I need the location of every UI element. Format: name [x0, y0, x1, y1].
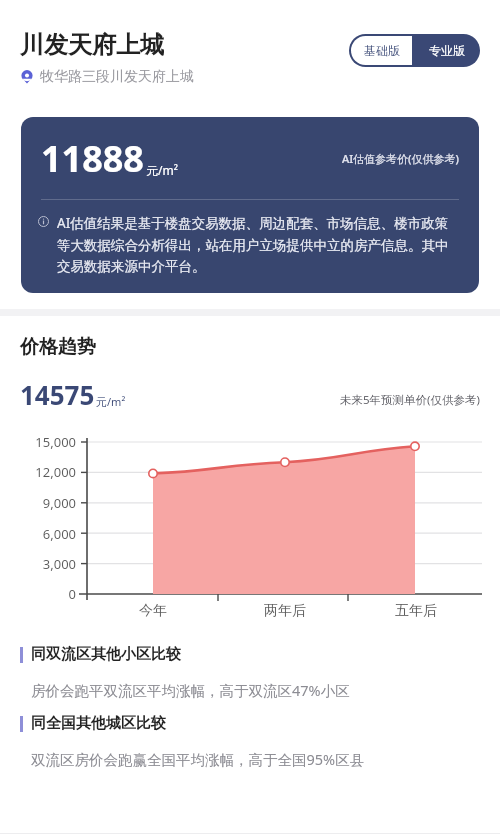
staticText: 同全国其他城区比较 — [31, 714, 166, 733]
staticText: 元/m² — [146, 162, 178, 178]
staticText: 五年后 — [382, 602, 450, 620]
staticText: 12,000 — [0, 463, 76, 481]
staticText: 价格趋势 — [20, 335, 96, 359]
button[interactable]: 11888 — [21, 117, 479, 293]
staticText: 15,000 — [0, 433, 76, 451]
staticText: 9,000 — [0, 494, 76, 512]
staticText: 两年后 — [251, 602, 319, 620]
staticText: 11888 — [41, 134, 144, 183]
staticText: 未来5年预测单价(仅供参考) — [340, 392, 480, 408]
button[interactable]: 基础版 — [351, 36, 412, 65]
staticText: 双流区房价会跑赢全国平均涨幅，高于全国95%区县 — [31, 749, 365, 769]
staticText: 3,000 — [0, 555, 76, 573]
button[interactable]: 同双流区其他小区比较 — [0, 645, 500, 700]
staticText: 专业版 — [429, 43, 465, 58]
staticText: 房价会跑平双流区平均涨幅，高于双流区47%小区 — [31, 680, 350, 700]
staticText: 同双流区其他小区比较 — [31, 645, 181, 664]
staticText: 川发天府上城 — [20, 30, 164, 60]
staticText: 基础版 — [364, 43, 400, 58]
staticText: AI估值结果是基于楼盘交易数据、周边配套、市场信息、楼市政策等大数据综合分析得出… — [57, 214, 459, 275]
staticText: 牧华路三段川发天府上城 — [40, 68, 194, 86]
staticText: AI估值参考价(仅供参考) — [342, 151, 459, 166]
staticText: 今年 — [128, 602, 178, 620]
staticText: 元/m² — [96, 394, 126, 409]
staticText: 0 — [0, 585, 76, 603]
staticText: 6,000 — [0, 525, 76, 543]
button[interactable]: 专业版 — [414, 34, 480, 67]
staticText: 14575 — [20, 377, 95, 412]
button[interactable]: 同全国其他城区比较 — [0, 714, 500, 769]
